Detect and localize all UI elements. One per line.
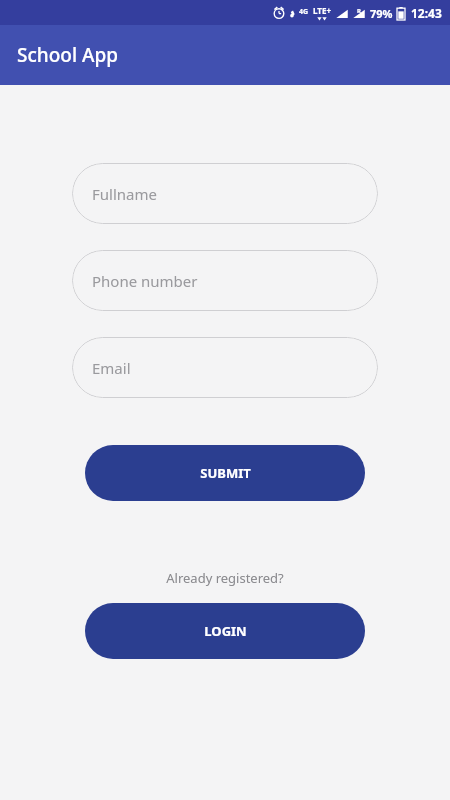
- button[interactable]: SUBMIT: [85, 445, 365, 501]
- staticText: LOGIN: [204, 622, 247, 640]
- button[interactable]: LOGIN: [85, 603, 365, 659]
- staticText: 12:43: [411, 5, 442, 21]
- staticText: LTE+: [313, 5, 331, 16]
- staticText: Fullname: [92, 184, 157, 204]
- staticText: Email: [92, 358, 131, 378]
- staticText: 79%: [370, 6, 393, 21]
- staticText: School App: [17, 42, 118, 68]
- staticText: SUBMIT: [200, 464, 251, 482]
- staticText: 4G: [299, 7, 309, 17]
- button[interactable]: Fullname: [72, 163, 378, 224]
- button[interactable]: Email: [72, 337, 378, 398]
- staticText: Phone number: [92, 271, 198, 291]
- staticText: Already registered?: [166, 569, 284, 587]
- button[interactable]: Phone number: [72, 250, 378, 311]
- staticText: R: [357, 7, 361, 15]
